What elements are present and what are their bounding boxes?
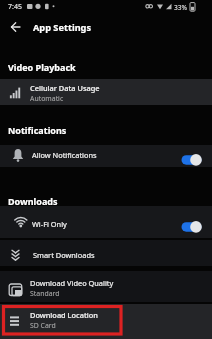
staticText: Automatic <box>30 94 64 103</box>
button[interactable] <box>181 221 203 233</box>
staticText: 33% <box>174 3 188 12</box>
staticText: Video Playback <box>8 61 76 73</box>
button[interactable] <box>7 18 25 36</box>
button[interactable] <box>181 154 203 166</box>
button[interactable]: Download Location <box>0 304 212 339</box>
staticText: SD Card <box>30 321 56 330</box>
staticText: Download Location <box>30 310 98 320</box>
staticText: App Settings <box>33 21 92 34</box>
staticText: Wi-Fi Only <box>32 219 67 229</box>
staticText: Notifications <box>8 124 67 136</box>
staticText: 7:45 <box>8 2 22 12</box>
button[interactable]: Smart Downloads <box>0 240 212 266</box>
staticText: Allow Notifications <box>32 150 97 160</box>
button[interactable]: Allow Notifications <box>0 145 212 167</box>
staticText: Download Video Quality <box>30 278 114 288</box>
button[interactable]: Wi-Fi Only <box>0 206 212 238</box>
button[interactable]: Cellular Data Usage <box>0 79 212 105</box>
staticText: Downloads <box>8 195 58 207</box>
staticText: Smart Downloads <box>33 250 95 260</box>
button[interactable]: Download Video Quality <box>0 271 212 302</box>
staticText: Cellular Data Usage <box>30 83 100 93</box>
staticText: Standard <box>30 289 60 298</box>
